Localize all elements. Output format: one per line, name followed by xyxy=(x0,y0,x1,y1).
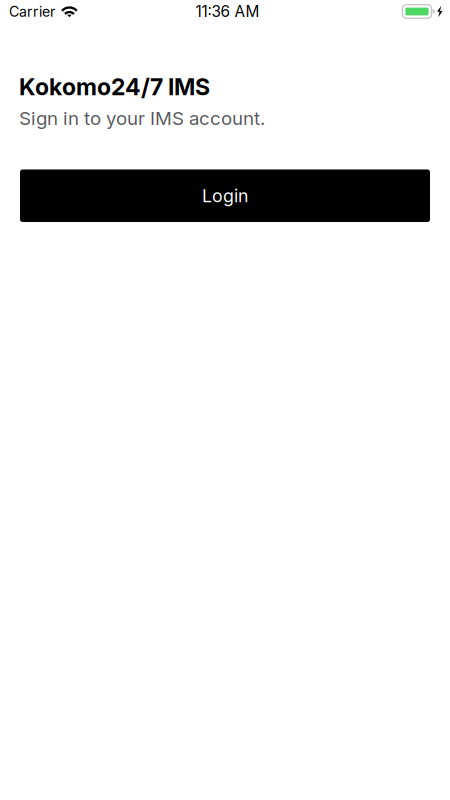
staticText: Login xyxy=(202,185,248,206)
staticText: Carrier xyxy=(9,3,55,20)
staticText: Sign in to your IMS account. xyxy=(19,107,265,129)
staticText: Kokomo24/7 IMS xyxy=(19,73,210,101)
button[interactable]: Login xyxy=(20,169,430,222)
staticText: 11:36 AM xyxy=(195,2,259,21)
